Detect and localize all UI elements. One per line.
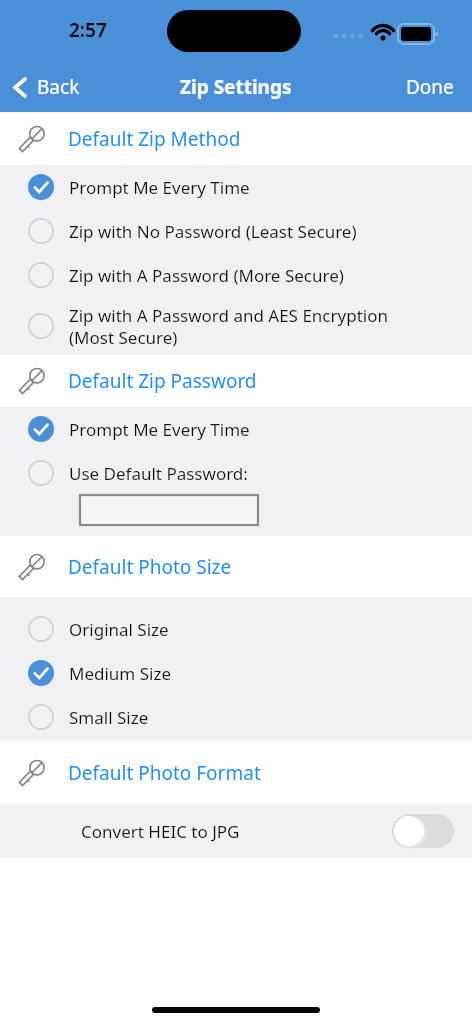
button[interactable]: Medium Size	[0, 651, 472, 695]
staticText: Zip with A Password and AES Encryption (…	[69, 304, 388, 349]
button[interactable]: Use Default Password:	[0, 451, 472, 525]
staticText: Default Photo Format	[68, 760, 261, 786]
button[interactable]: Prompt Me Every Time	[0, 165, 472, 209]
staticText: Prompt Me Every Time	[69, 418, 250, 441]
button[interactable]: Small Size	[0, 695, 472, 739]
button[interactable]: Zip with No Password (Least Secure)	[0, 209, 472, 253]
button[interactable]: Back	[0, 64, 94, 110]
staticText: Default Photo Size	[68, 554, 232, 580]
staticText: Convert HEIC to JPG	[81, 820, 240, 843]
staticText: Zip with No Password (Least Secure)	[69, 220, 357, 243]
button[interactable]: Convert HEIC to JPG	[0, 804, 472, 858]
staticText: Small Size	[69, 706, 149, 729]
staticText: Medium Size	[69, 662, 171, 685]
staticText: 2:57	[69, 17, 107, 43]
button[interactable]: Original Size	[0, 607, 472, 651]
staticText: Zip Settings	[180, 74, 292, 100]
button[interactable]: Zip with A Password and AES Encryption (…	[0, 297, 472, 355]
other: Convert HEIC to JPG switch	[392, 814, 454, 848]
staticText: Done	[406, 74, 454, 100]
button[interactable]: Prompt Me Every Time	[0, 407, 472, 451]
button[interactable]: Zip with A Password (More Secure)	[0, 253, 472, 297]
staticText: Default Zip Method	[68, 126, 241, 152]
staticText: Use Default Password:	[69, 462, 248, 485]
staticText: Default Zip Password	[68, 368, 257, 394]
button[interactable]: Done	[388, 62, 472, 112]
staticText: Zip with A Password (More Secure)	[69, 264, 344, 287]
staticText: Prompt Me Every Time	[69, 176, 250, 199]
staticText: Original Size	[69, 618, 169, 641]
staticText: Back	[37, 74, 80, 100]
